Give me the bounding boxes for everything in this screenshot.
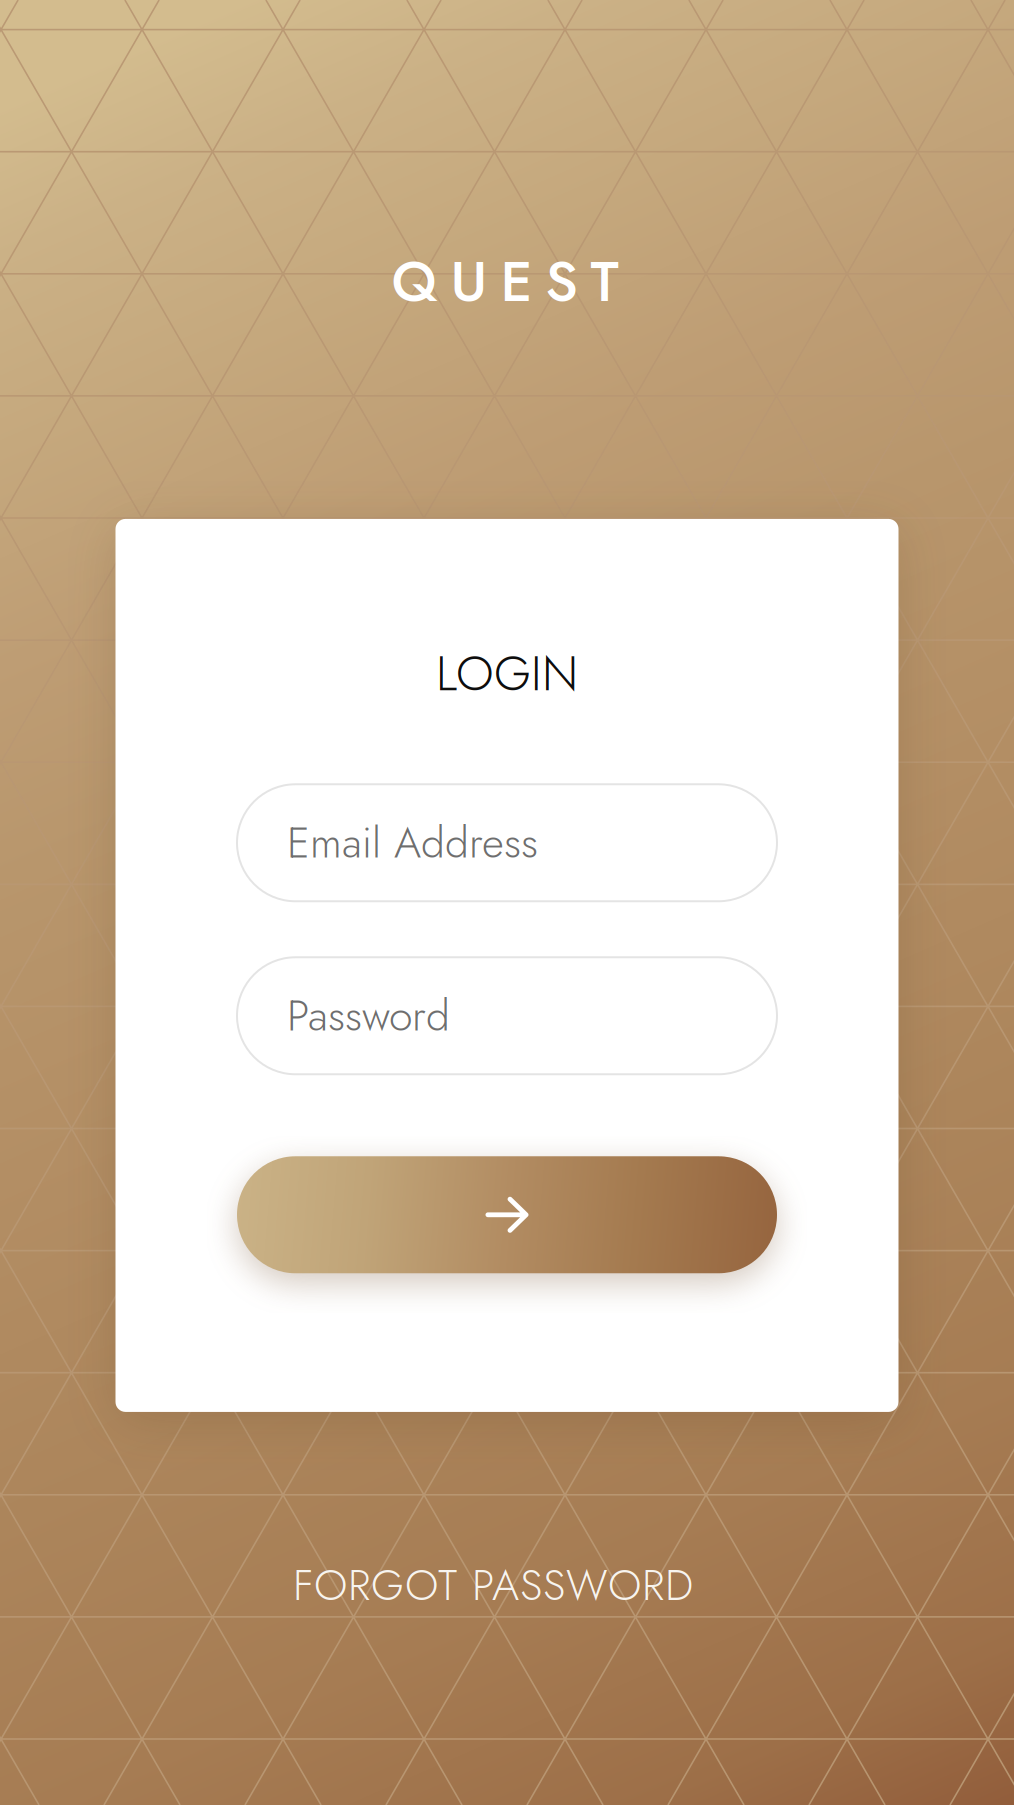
button[interactable]: Email Address <box>237 784 777 901</box>
staticText: Password <box>287 985 450 1047</box>
staticText: LOGIN <box>436 639 578 708</box>
staticText: FORGOT PASSWORD <box>293 1554 693 1616</box>
button[interactable]: Sign in <box>237 1156 777 1273</box>
button[interactable]: FORGOT PASSWORD <box>279 1540 735 1630</box>
button[interactable]: Password <box>237 957 777 1074</box>
staticText: Email Address <box>287 812 538 874</box>
staticText: QUEST <box>391 241 618 322</box>
